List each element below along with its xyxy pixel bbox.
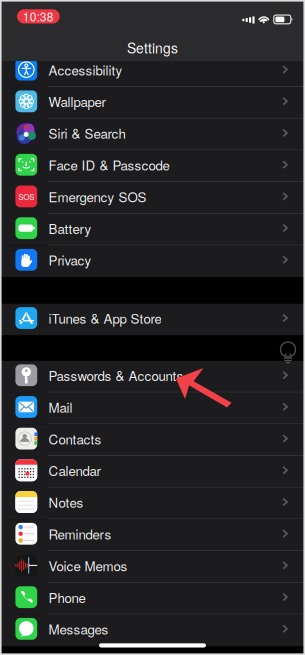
- staticText: SOS: [18, 191, 34, 202]
- staticText: Battery: [48, 219, 91, 238]
- button[interactable]: Wallpaper: [0, 87, 305, 119]
- button[interactable]: Accessibility: [0, 55, 305, 87]
- staticText: Calendar: [48, 461, 100, 480]
- button[interactable]: SOS: [0, 182, 305, 214]
- staticText: Mail: [48, 397, 72, 416]
- staticText: Wallpaper: [48, 92, 105, 111]
- staticText: Accessibility: [48, 60, 122, 79]
- button[interactable]: Messages: [0, 614, 305, 646]
- staticText: Messages: [48, 619, 108, 638]
- button[interactable]: Privacy: [0, 245, 305, 277]
- button[interactable]: Face ID & Passcode: [0, 150, 305, 182]
- staticText: Privacy: [48, 250, 91, 269]
- staticText: Passwords & Accounts: [48, 366, 183, 385]
- staticText: Settings: [127, 38, 178, 57]
- button[interactable]: Calendar: [0, 456, 305, 488]
- button[interactable]: Passwords & Accounts: [0, 361, 305, 393]
- button[interactable]: Phone: [0, 583, 305, 614]
- staticText: Face ID & Passcode: [48, 155, 169, 174]
- staticText: Reminders: [48, 524, 111, 543]
- staticText: iTunes & App Store: [48, 308, 161, 328]
- button[interactable]: iTunes & App Store: [0, 304, 305, 335]
- button[interactable]: Notes: [0, 488, 305, 519]
- staticText: Notes: [48, 492, 83, 512]
- button[interactable]: Contacts: [0, 424, 305, 456]
- staticText: Emergency SOS: [48, 187, 146, 206]
- staticText: Siri & Search: [48, 123, 125, 143]
- button[interactable]: Mail: [0, 393, 305, 424]
- staticText: Phone: [48, 588, 85, 607]
- staticText: 10:38: [23, 8, 54, 25]
- button[interactable]: Siri & Search: [0, 119, 305, 150]
- button[interactable]: Voice Memos: [0, 551, 305, 583]
- button[interactable]: Reminders: [0, 519, 305, 551]
- button[interactable]: Battery: [0, 214, 305, 245]
- staticText: Contacts: [48, 429, 101, 448]
- staticText: Voice Memos: [48, 556, 127, 575]
